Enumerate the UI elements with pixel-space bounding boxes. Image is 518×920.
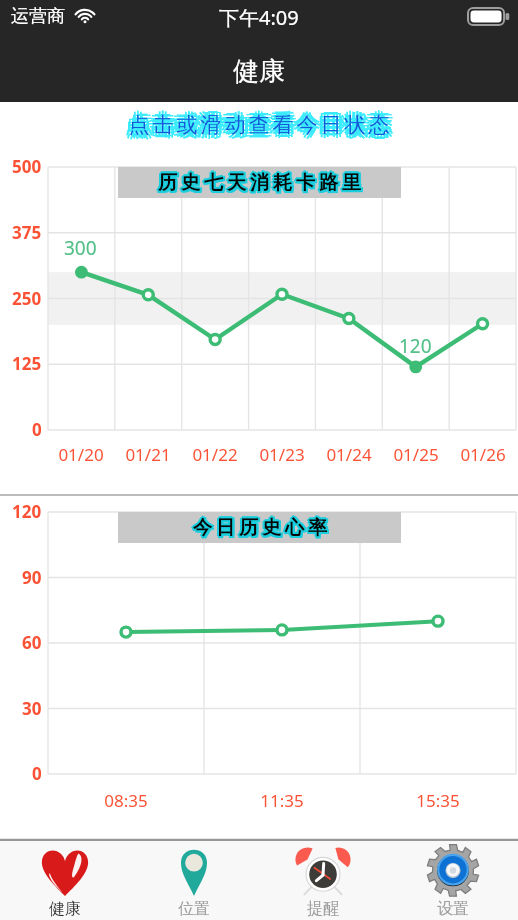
staticText: 15:35 [416, 789, 460, 812]
staticText: 点击或滑动查看今日状态 [127, 108, 391, 134]
staticText: 点击或滑动查看今日状态 [124, 115, 388, 141]
button[interactable]: 位置 [129, 841, 258, 920]
staticText: 历史七天消耗卡路里 [158, 170, 365, 194]
button[interactable]: 提醒 [258, 841, 388, 920]
staticText: 08:35 [104, 789, 148, 812]
staticText: 01/20 [58, 443, 104, 466]
button[interactable]: 设置 [388, 841, 518, 920]
staticText: 历史七天消耗卡路里 [156, 171, 363, 195]
staticText: 125 [12, 352, 42, 375]
staticText: 01/24 [326, 443, 372, 466]
staticText: 90 [22, 566, 42, 589]
staticText: 01/25 [393, 443, 439, 466]
staticText: 250 [12, 287, 42, 310]
staticText: 今日历史心率 [191, 514, 329, 538]
staticText: 今日历史心率 [189, 516, 327, 540]
staticText: 今日历史心率 [191, 516, 329, 540]
staticText: 0 [32, 762, 42, 785]
staticText: 点击或滑动查看今日状态 [130, 109, 394, 135]
staticText: 历史七天消耗卡路里 [158, 171, 365, 195]
staticText: 120 [399, 333, 432, 359]
staticText: 健康 [233, 55, 285, 88]
staticText: 11:35 [260, 789, 304, 812]
staticText: 60 [22, 631, 42, 654]
staticText: 今日历史心率 [190, 518, 328, 542]
staticText: 今日历史心率 [193, 516, 331, 540]
staticText: 点击或滑动查看今日状态 [124, 109, 388, 135]
staticText: 今日历史心率 [193, 518, 331, 542]
staticText: 01/21 [125, 443, 171, 466]
staticText: 30 [22, 697, 42, 720]
staticText: 0 [32, 418, 42, 441]
staticText: 点击或滑动查看今日状态 [123, 112, 387, 138]
staticText: 健康 [49, 899, 81, 919]
staticText: 提醒 [307, 899, 339, 919]
staticText: 点击或滑动查看今日状态 [127, 112, 391, 138]
button[interactable]: 历史七天消耗卡路里 [118, 167, 401, 198]
button[interactable]: 点击或滑动查看今日状态 [0, 107, 518, 143]
button[interactable]: 健康 [0, 841, 129, 920]
staticText: 历史七天消耗卡路里 [156, 173, 363, 197]
staticText: 历史七天消耗卡路里 [156, 169, 363, 193]
staticText: 历史七天消耗卡路里 [155, 170, 362, 194]
staticText: 历史七天消耗卡路里 [154, 171, 361, 195]
staticText: 点击或滑动查看今日状态 [130, 115, 394, 141]
staticText: 历史七天消耗卡路里 [155, 173, 362, 197]
staticText: 01/26 [460, 443, 506, 466]
staticText: 设置 [437, 899, 469, 919]
staticText: 下午4:09 [219, 4, 299, 31]
staticText: 500 [12, 155, 42, 178]
staticText: 今日历史心率 [193, 515, 331, 539]
staticText: 300 [64, 235, 97, 261]
staticText: 点击或滑动查看今日状态 [127, 116, 391, 142]
staticText: 01/23 [259, 443, 305, 466]
staticText: 今日历史心率 [191, 518, 329, 542]
staticText: 运营商 [11, 5, 65, 28]
staticText: 位置 [178, 899, 210, 919]
staticText: 120 [12, 500, 42, 523]
staticText: 01/22 [192, 443, 238, 466]
staticText: 历史七天消耗卡路里 [158, 173, 365, 197]
staticText: 点击或滑动查看今日状态 [131, 112, 395, 138]
button[interactable]: 今日历史心率 [118, 512, 401, 543]
staticText: 今日历史心率 [190, 515, 328, 539]
staticText: 375 [12, 221, 42, 244]
